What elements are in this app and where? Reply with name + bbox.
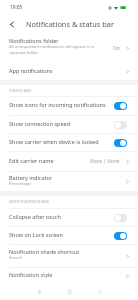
button[interactable] xyxy=(114,232,127,240)
staticText: Notification shade shortcut xyxy=(9,248,80,255)
button[interactable]: Show carrier when device is locked xyxy=(0,134,138,151)
staticText: 19:05 xyxy=(10,4,23,11)
button[interactable]: Home xyxy=(62,285,76,299)
staticText: Show carrier when device is locked xyxy=(9,138,99,145)
button[interactable]: Back xyxy=(92,285,106,299)
staticText: Show on Lock screen xyxy=(9,231,63,238)
staticText: On xyxy=(113,45,120,52)
staticText: NOTIFICATION SHADE xyxy=(9,199,50,204)
button[interactable]: Battery indicator xyxy=(0,172,138,191)
button[interactable] xyxy=(114,214,127,222)
staticText: Edit carrier name xyxy=(9,157,54,164)
button[interactable]: Notification style xyxy=(0,268,138,284)
button[interactable] xyxy=(114,139,127,147)
button[interactable]: App notifications xyxy=(0,63,138,80)
staticText: Battery indicator xyxy=(9,174,53,181)
staticText: Percentage xyxy=(9,181,31,187)
staticText: Notifications folder xyxy=(9,37,59,44)
staticText: Show icons for incoming notifications xyxy=(9,101,106,108)
button[interactable]: Notification shade shortcut xyxy=(0,245,138,267)
button[interactable]: Show connection speed xyxy=(0,116,138,133)
staticText: Search xyxy=(9,255,22,261)
staticText: Notification style xyxy=(9,271,53,278)
staticText: STATUS BAR xyxy=(9,88,31,93)
staticText: Notifications & status bar xyxy=(26,19,115,29)
staticText: Show connection speed xyxy=(9,120,71,127)
button[interactable] xyxy=(114,121,127,129)
staticText: All unimportant notifications will appea… xyxy=(9,44,97,56)
button[interactable]: Back xyxy=(0,15,22,33)
button[interactable] xyxy=(114,102,127,110)
button[interactable]: Collapse after touch xyxy=(0,209,138,226)
button[interactable]: Recents xyxy=(32,285,46,299)
staticText: App notifications xyxy=(9,67,53,74)
staticText: None | None xyxy=(90,158,120,165)
staticText: Collapse after touch xyxy=(9,213,61,220)
button[interactable]: Show icons for incoming notifications xyxy=(0,97,138,115)
button[interactable]: Notifications folder xyxy=(0,33,138,63)
button[interactable]: Edit carrier name xyxy=(0,152,138,171)
button[interactable]: Show on Lock screen xyxy=(0,227,138,244)
